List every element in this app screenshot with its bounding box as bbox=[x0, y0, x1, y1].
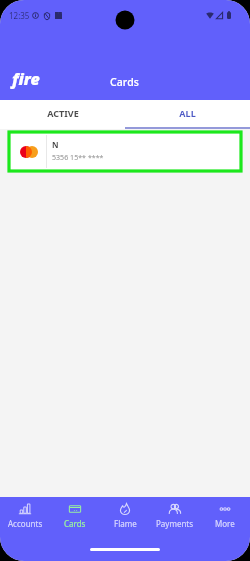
button[interactable]: N bbox=[9, 132, 241, 171]
staticText: fire bbox=[12, 68, 40, 90]
button[interactable]: Cards bbox=[50, 503, 100, 535]
button[interactable]: ACTIVE bbox=[0, 100, 125, 129]
staticText: N bbox=[52, 139, 59, 150]
staticText: 5356 15** **** bbox=[52, 153, 104, 163]
button[interactable]: Flame bbox=[100, 503, 150, 535]
staticText: 12:35 bbox=[9, 10, 30, 21]
button[interactable]: ALL bbox=[125, 100, 250, 129]
button[interactable]: Payments bbox=[150, 503, 200, 535]
staticText: Accounts bbox=[8, 518, 43, 529]
staticText: More bbox=[215, 518, 235, 529]
staticText: ALL bbox=[179, 107, 196, 119]
button[interactable]: Accounts bbox=[0, 503, 50, 535]
staticText: ACTIVE bbox=[47, 107, 79, 119]
staticText: Flame bbox=[114, 518, 137, 529]
staticText: Payments bbox=[156, 518, 194, 529]
staticText: Cards bbox=[64, 518, 86, 529]
staticText: Cards bbox=[110, 75, 140, 89]
button[interactable]: More bbox=[200, 503, 250, 535]
